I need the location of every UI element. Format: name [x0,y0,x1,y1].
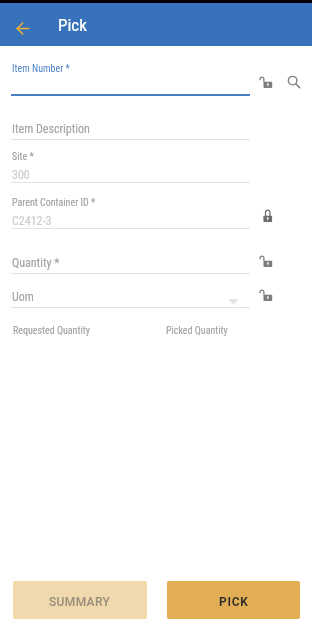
button[interactable]: Navigate back [9,15,35,41]
button[interactable]: Unlock field [259,255,272,268]
button[interactable]: Search [287,75,301,89]
staticText: Item Number * [12,63,70,75]
staticText: Site * [12,151,34,163]
staticText: 300 [12,168,30,182]
button[interactable]: Unlock field [259,76,272,89]
staticText: Picked Quantity [166,325,228,337]
staticText: SUMMARY [49,595,111,609]
button[interactable]: Lock field [259,210,272,223]
staticText: Parent Container ID * [12,197,96,209]
button[interactable]: PICK [167,581,300,619]
staticText: Requested Quantity [13,325,90,337]
staticText: Quantity * [12,256,60,270]
staticText: Pick [58,15,87,35]
staticText: Uom [12,290,34,304]
staticText: Item Description [12,122,90,136]
button[interactable]: Unlock field [259,289,272,302]
staticText: C2412-3 [12,214,52,228]
button[interactable]: SUMMARY [13,581,147,619]
staticText: PICK [219,595,249,609]
